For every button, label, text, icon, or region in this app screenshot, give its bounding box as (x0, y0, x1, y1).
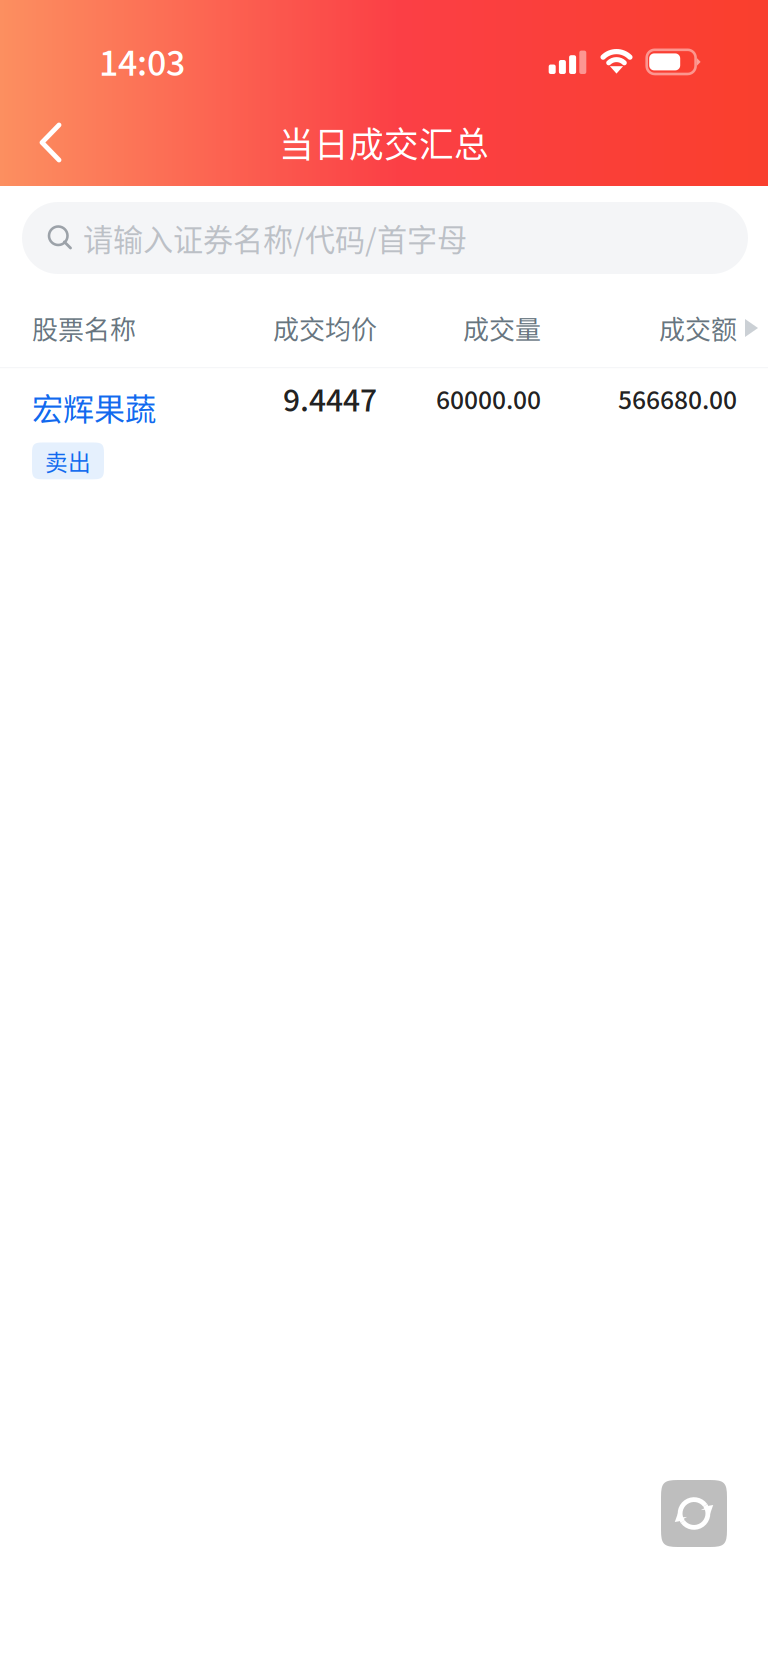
staticText: 宏辉果蔬 (32, 384, 156, 429)
staticText: 成交额 (659, 309, 737, 347)
staticText: 60000.00 (436, 381, 541, 416)
staticText: 卖出 (45, 444, 91, 477)
button[interactable]: Refresh (661, 1480, 727, 1547)
staticText: 9.4447 (283, 377, 377, 420)
staticText: 当日成交汇总 (279, 117, 489, 168)
button[interactable]: Sort by turnover (0, 300, 758, 356)
staticText: 请输入证券名称/代码/首字母 (83, 216, 467, 260)
staticText: 14:03 (99, 36, 185, 86)
staticText: 成交量 (463, 309, 541, 347)
staticText: 566680.00 (618, 381, 737, 416)
button[interactable]: Back (0, 79, 102, 206)
staticText: 成交均价 (273, 309, 377, 347)
button[interactable]: 请输入证券名称/代码/首字母 (22, 202, 748, 274)
button[interactable]: 宏辉果蔬 (0, 368, 768, 498)
staticText: 股票名称 (32, 309, 136, 347)
